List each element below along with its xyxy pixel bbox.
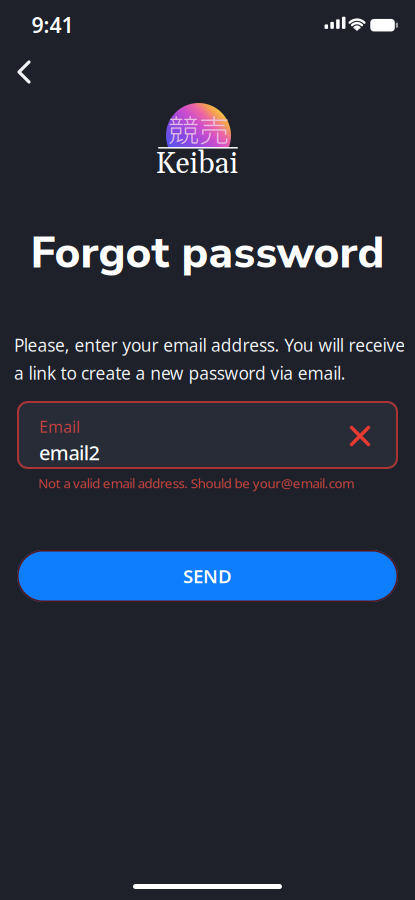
button[interactable]: Email, email2: [17, 401, 398, 469]
staticText: Email: [39, 416, 80, 437]
staticText: Not a valid email address. Should be you…: [38, 474, 354, 492]
staticText: Forgot password: [30, 223, 384, 283]
staticText: 9:41: [31, 11, 73, 39]
button[interactable]: SEND: [17, 550, 398, 602]
staticText: Keibai: [155, 146, 238, 183]
staticText: 競売: [168, 106, 230, 151]
button[interactable]: Clear text: [338, 414, 382, 458]
button[interactable]: Back: [2, 50, 46, 94]
staticText: a link to create a new password via emai…: [14, 361, 346, 384]
staticText: SEND: [183, 564, 232, 588]
staticText: Please, enter your email address. You wi…: [14, 333, 405, 356]
staticText: email2: [39, 439, 99, 466]
